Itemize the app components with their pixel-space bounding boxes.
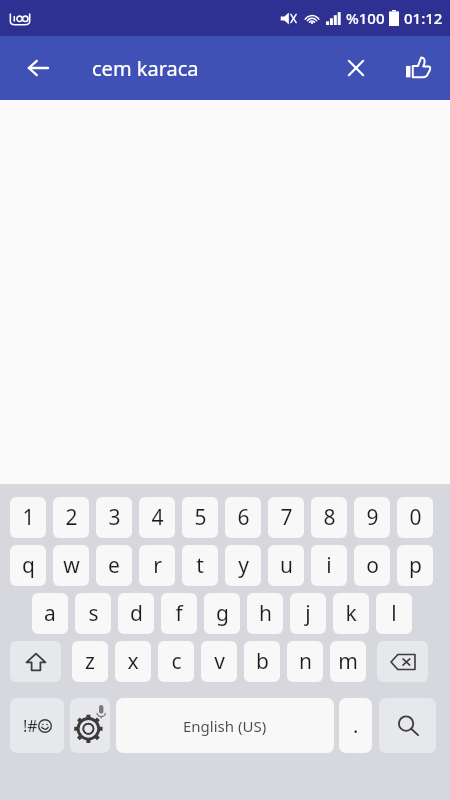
button[interactable]: d [118,593,154,634]
button[interactable]: n [287,641,323,682]
button[interactable]: u [268,545,304,586]
button[interactable]: Clear [332,44,380,92]
staticText: v [214,647,225,676]
staticText: z [85,647,95,676]
button[interactable]: i [311,545,347,586]
button[interactable]: a [32,593,68,634]
staticText: 1 [22,503,35,532]
button[interactable]: 4 [139,497,175,538]
button[interactable]: c [158,641,194,682]
button[interactable]: x [115,641,151,682]
staticText: k [345,599,357,628]
staticText: 4 [151,503,164,532]
staticText: u [280,551,293,580]
button[interactable]: v [201,641,237,682]
staticText: p [409,551,422,580]
button[interactable]: g [204,593,240,634]
staticText: English (US) [183,716,267,736]
staticText: 7 [280,503,293,532]
button[interactable]: Settings [70,698,110,753]
button[interactable]: Backspace [377,641,428,682]
button[interactable]: English (US) [116,698,334,753]
button[interactable]: 0 [397,497,433,538]
button[interactable]: Back [16,46,60,90]
button[interactable]: q [10,545,46,586]
staticText: j [305,599,311,628]
staticText: y [238,551,249,580]
button[interactable]: k [333,593,369,634]
staticText: %100 [346,8,385,28]
staticText: q [22,551,35,580]
staticText: . [353,712,359,739]
button[interactable]: o [354,545,390,586]
staticText: f [175,599,183,628]
staticText: m [338,647,358,676]
staticText: d [130,599,143,628]
staticText: l [391,599,397,628]
button[interactable]: b [244,641,280,682]
button[interactable]: 2 [53,497,89,538]
button[interactable]: Like [396,46,440,90]
button[interactable]: t [182,545,218,586]
staticText: 6 [237,503,250,532]
staticText: 2 [65,503,78,532]
staticText: c [171,647,182,676]
button[interactable]: z [72,641,108,682]
staticText: o [366,551,379,580]
staticText: t [196,551,204,580]
button[interactable]: 8 [311,497,347,538]
staticText: g [216,599,229,628]
staticText: 3 [108,503,121,532]
staticText: e [108,551,120,580]
button[interactable]: r [139,545,175,586]
button[interactable]: h [247,593,283,634]
staticText: x [127,647,139,676]
button[interactable]: Search [379,698,436,753]
staticText: 01:12 [404,8,443,28]
button[interactable]: y [225,545,261,586]
button[interactable]: p [397,545,433,586]
button[interactable]: j [290,593,326,634]
staticText: h [259,599,272,628]
button[interactable]: 7 [268,497,304,538]
button[interactable]: m [330,641,366,682]
button[interactable]: s [75,593,111,634]
button[interactable]: f [161,593,197,634]
staticText: 8 [323,503,336,532]
staticText: b [256,647,269,676]
button[interactable]: !# [10,698,64,753]
button[interactable]: Shift [10,641,61,682]
staticText: s [88,599,99,628]
button[interactable]: e [96,545,132,586]
staticText: n [299,647,312,676]
staticText: !# [23,715,38,737]
staticText: i [326,551,332,580]
staticText: cem karaca [92,55,199,82]
staticText: 5 [194,503,207,532]
staticText: 0 [409,503,422,532]
button[interactable]: 5 [182,497,218,538]
button[interactable]: l [376,593,412,634]
button[interactable]: 9 [354,497,390,538]
button[interactable]: 1 [10,497,46,538]
button[interactable]: . [339,698,372,753]
staticText: w [63,551,80,580]
button[interactable]: 3 [96,497,132,538]
button[interactable]: 6 [225,497,261,538]
staticText: r [153,551,162,580]
button[interactable]: w [53,545,89,586]
staticText: a [44,599,56,628]
staticText: 9 [366,503,379,532]
